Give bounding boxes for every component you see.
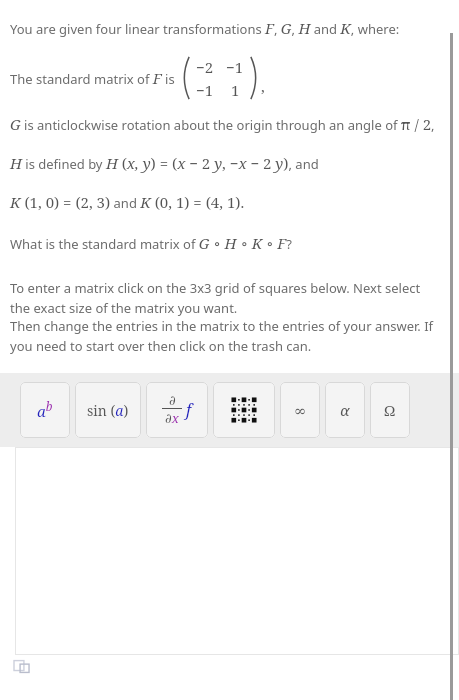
staticText: ∞	[294, 402, 307, 419]
staticText: Ω	[384, 400, 396, 420]
button[interactable]: Exponent a to the b	[20, 382, 70, 438]
staticText: 1	[231, 80, 240, 100]
staticText: Then change the entries in the matrix to…	[10, 317, 445, 355]
button[interactable]: Partial derivative	[146, 382, 208, 438]
staticText: −2	[196, 57, 214, 77]
staticText: What is the standard matrix of G ∘ H ∘ K…	[10, 233, 292, 253]
staticText: H is defined by H (x, y) = (x − 2 y, −x …	[10, 153, 319, 173]
staticText: f	[186, 399, 192, 421]
staticText: You are given four linear transformation…	[10, 18, 400, 38]
staticText: To enter a matrix click on the 3x3 grid …	[10, 279, 443, 317]
staticText: The standard matrix of F is	[10, 68, 179, 88]
staticText: −1	[226, 57, 244, 77]
staticText: G is anticlockwise rotation about the or…	[10, 114, 435, 134]
staticText: α	[340, 400, 350, 420]
button[interactable]	[15, 447, 459, 655]
button[interactable]: Greek letter alpha	[325, 382, 365, 438]
button[interactable]: Trigonometric function sine	[75, 382, 141, 438]
staticText: K (1, 0) = (2, 3) and K (0, 1) = (4, 1).	[10, 192, 245, 212]
staticText: ,	[261, 76, 265, 96]
staticText: sin (a)	[87, 401, 129, 420]
button[interactable]: Attach file	[14, 659, 30, 675]
staticText: ∂	[169, 393, 176, 408]
button[interactable]: Greek letter omega	[370, 382, 410, 438]
staticText: ab	[37, 398, 53, 422]
staticText: ∂x	[165, 409, 179, 427]
staticText: −1	[196, 80, 214, 100]
button[interactable]: Infinity symbol	[280, 382, 320, 438]
button[interactable]: Matrix grid	[213, 382, 275, 438]
